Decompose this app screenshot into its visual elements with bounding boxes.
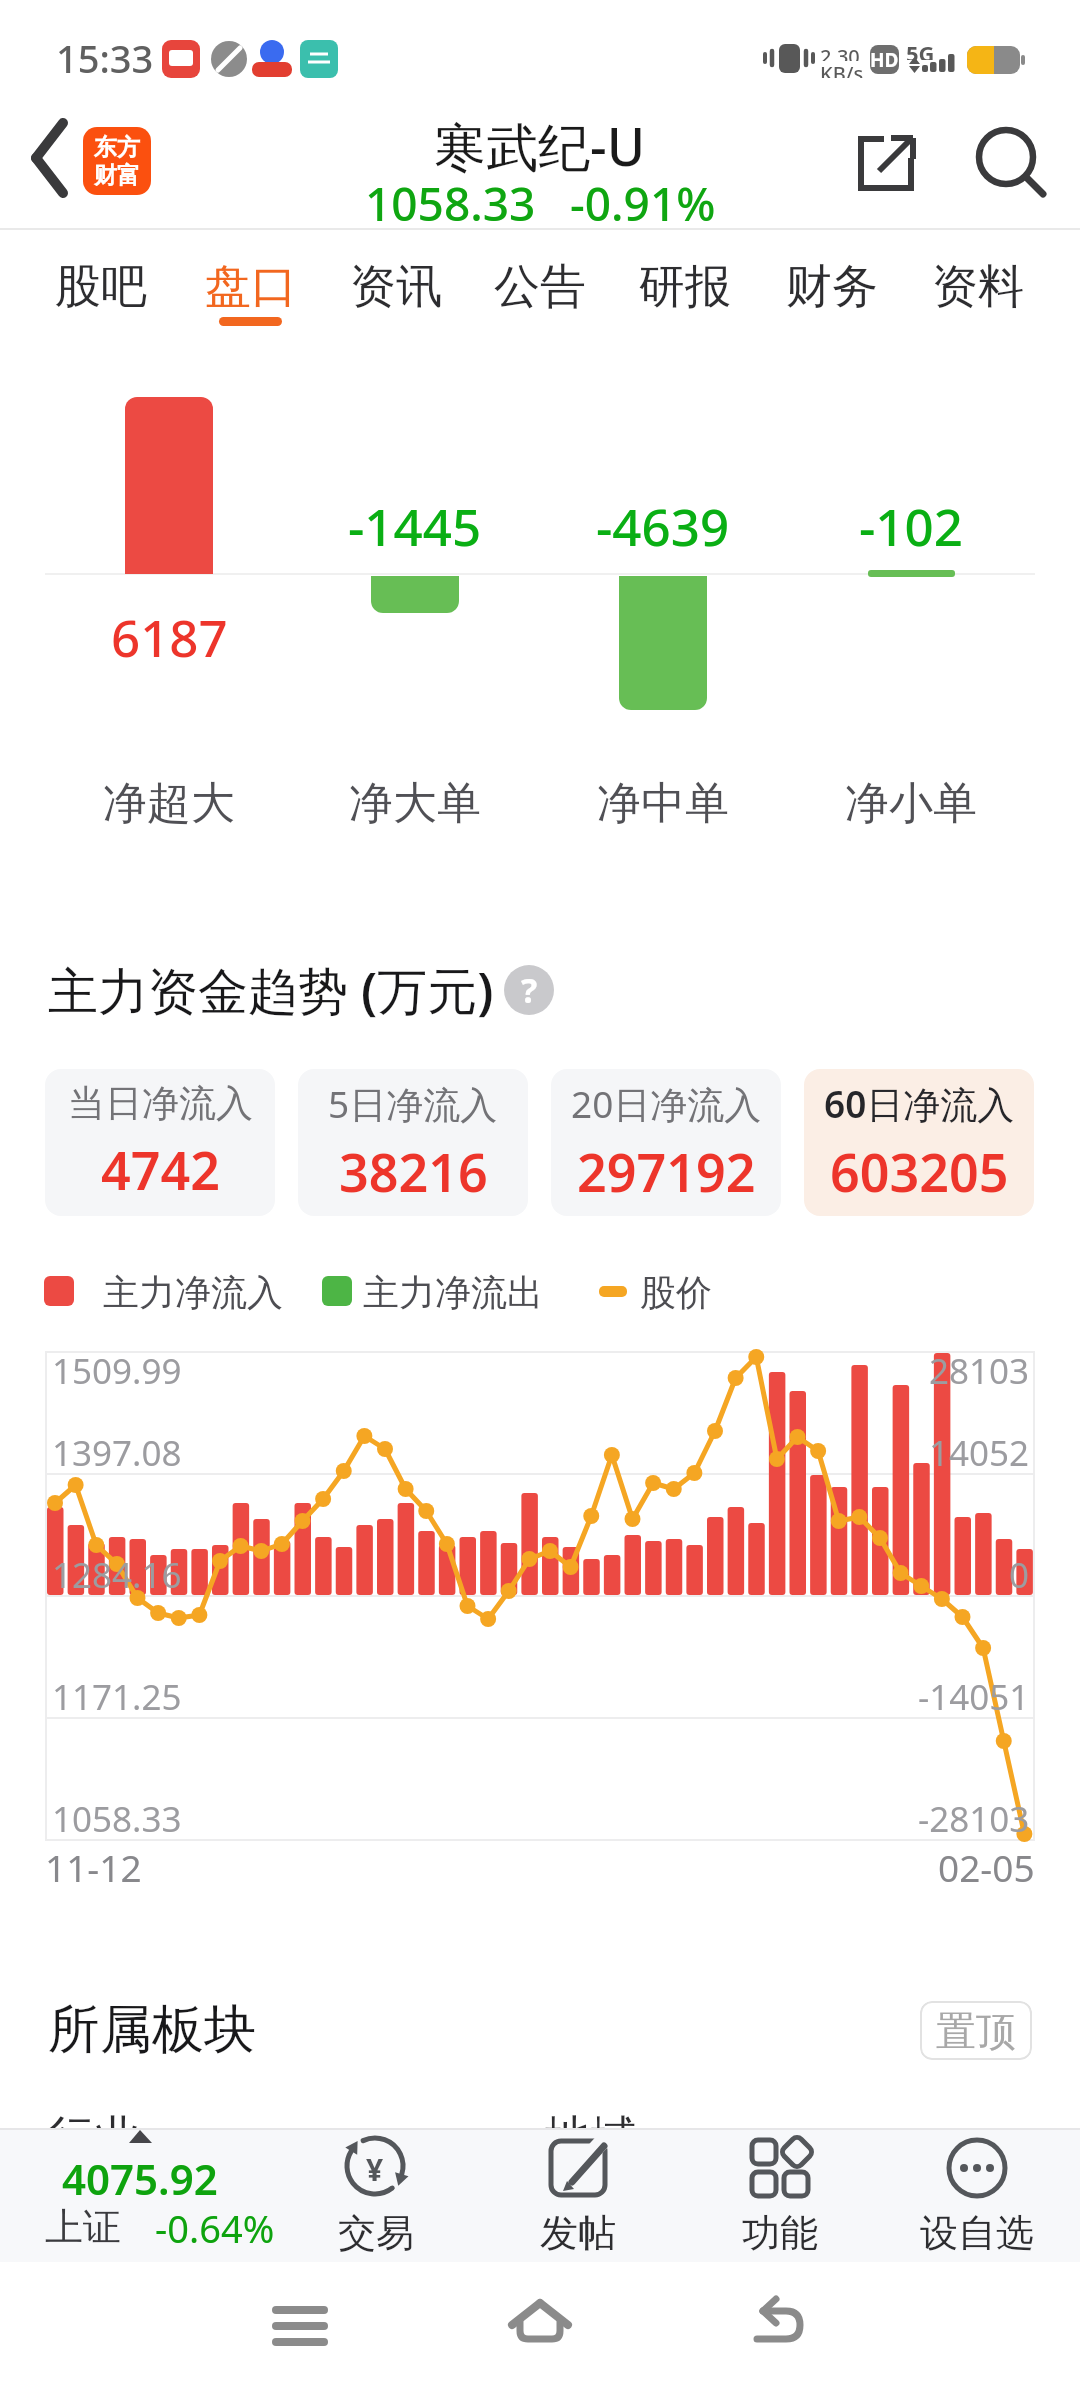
staticText: 38216 [339,1136,488,1207]
staticText: 11-12 [45,1842,142,1890]
staticText: 财务 [786,258,878,316]
staticText: 1284.16 [52,1551,182,1599]
button[interactable] [895,2130,1065,2260]
staticText: 资料 [932,258,1024,316]
staticText: 主力资金趋势 (万元) [48,956,494,1024]
button[interactable] [20,110,80,205]
staticText: -0.64% [155,2202,275,2252]
staticText: 设自选 [920,2209,1034,2257]
staticText: 603205 [830,1136,1009,1207]
staticText: 0 [1009,1551,1030,1599]
staticText: 净中单 [597,776,729,831]
staticText: 主力净流入 [103,1270,283,1315]
staticText: 28103 [929,1347,1030,1395]
staticText: 1397.08 [52,1429,182,1477]
button[interactable] [300,2130,460,2260]
staticText: 297192 [577,1136,756,1207]
staticText: 14052 [929,1429,1030,1477]
staticText: 1171.25 [52,1673,182,1721]
staticText: KB/s [820,60,864,78]
staticText: -4639 [596,491,730,553]
button[interactable] [260,2290,340,2360]
staticText: 上证 [45,2203,121,2251]
staticText: 财富 [94,161,140,190]
button[interactable] [0,2130,280,2260]
staticText: 净大单 [349,776,481,831]
staticText: 净小单 [845,776,977,831]
staticText: 主力净流出 [363,1270,543,1315]
button[interactable] [960,120,1055,210]
button[interactable]: 研报 [639,255,731,319]
staticText: 5G [906,38,935,60]
staticText: 功能 [742,2209,818,2257]
staticText: 股价 [640,1270,712,1315]
staticText: 净超大 [103,776,235,831]
staticText: 置顶 [936,2006,1016,2056]
button[interactable] [700,2130,860,2260]
button[interactable]: 20日净流入 [551,1069,781,1216]
staticText: -14051 [918,1673,1030,1721]
staticText: -0.91% [570,172,716,230]
staticText: 4742 [101,1134,220,1205]
staticText: -1445 [348,491,482,553]
staticText: 4075.92 [62,2150,218,2202]
button[interactable]: 盘口 [205,255,297,319]
button[interactable] [500,2290,580,2360]
staticText: ? [521,967,538,1013]
staticText: 当日净流入 [68,1080,253,1127]
button[interactable] [840,120,935,210]
staticText: 1058.33 [365,172,536,230]
button[interactable]: 5日净流入 [298,1069,528,1216]
button[interactable]: 股吧 [55,255,147,319]
staticText: 公告 [494,258,586,316]
staticText: 地域 [545,2109,637,2167]
staticText: 资讯 [350,258,442,316]
staticText: 寒武纪-U [434,110,646,178]
button[interactable] [740,2290,820,2360]
button[interactable]: 资料 [932,255,1024,319]
staticText: HD [870,47,899,73]
staticText: 发帖 [540,2209,616,2257]
button[interactable] [500,2130,660,2260]
staticText: 15:33 [56,32,154,84]
staticText: 1509.99 [52,1347,182,1395]
button[interactable]: 置顶 [920,2001,1032,2060]
staticText: 6187 [111,602,228,664]
staticText: 1058.33 [52,1795,182,1843]
staticText: 行业 [48,2109,140,2167]
staticText: 研报 [639,258,731,316]
staticText: 东方 [94,133,140,162]
staticText: 交易 [338,2209,414,2257]
staticText: 20日净流入 [571,1078,762,1129]
staticText: 60日净流入 [824,1078,1015,1129]
button[interactable]: 公告 [494,255,586,319]
button[interactable]: 资讯 [350,255,442,319]
staticText: -28103 [918,1795,1030,1843]
staticText: -102 [859,491,963,553]
staticText: 股吧 [55,258,147,316]
staticText: 5日净流入 [328,1078,498,1129]
button[interactable]: 当日净流入 [45,1069,275,1216]
staticText: ¥ [366,2149,384,2183]
button[interactable]: 财务 [786,255,878,319]
staticText: 盘口 [205,258,297,316]
button[interactable]: 60日净流入 [804,1069,1034,1216]
staticText: 所属板块 [48,1997,256,2063]
staticText: 02-05 [938,1842,1035,1890]
staticText: 2.30 [820,43,860,61]
